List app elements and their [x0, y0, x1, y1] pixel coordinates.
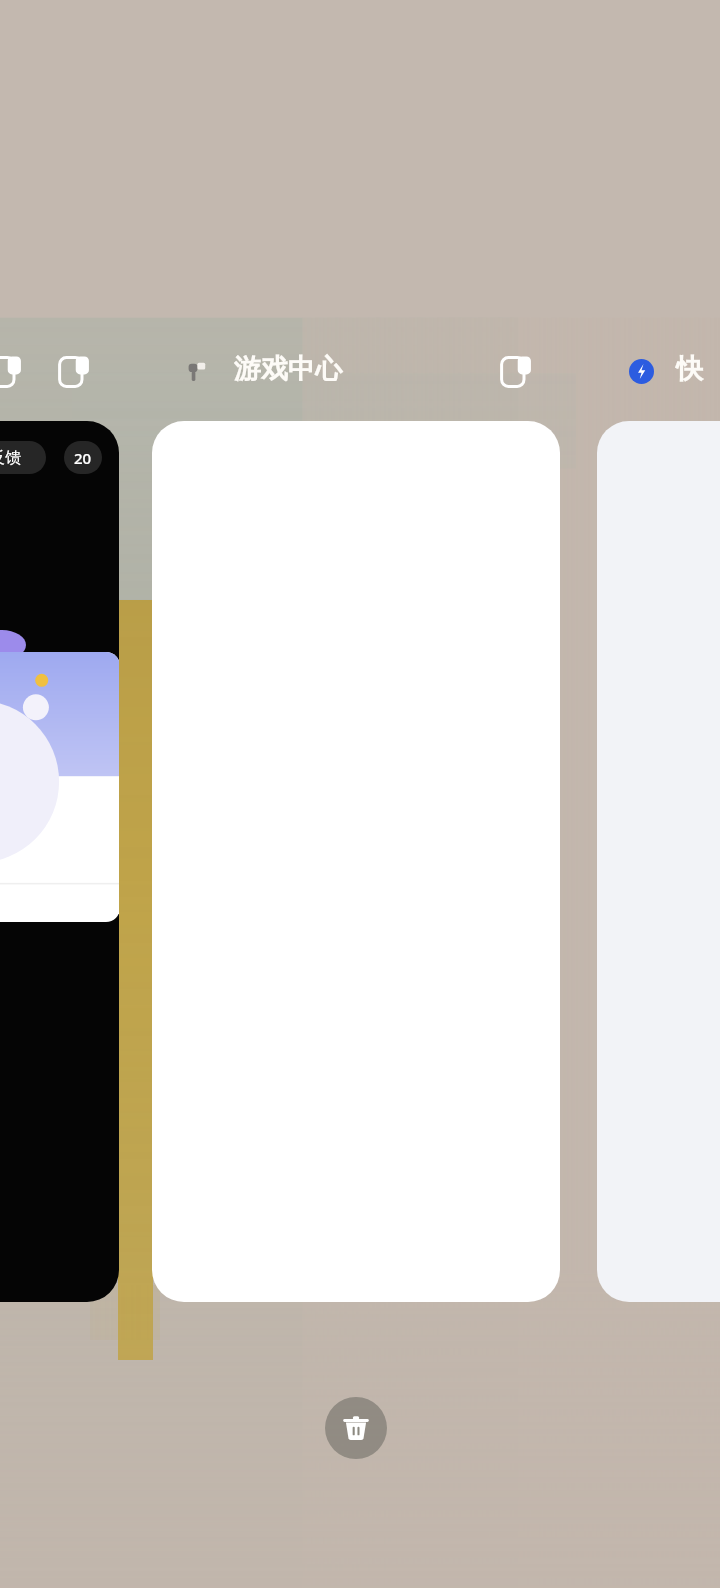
button[interactable] — [597, 421, 720, 1302]
button[interactable]: 快 — [676, 352, 703, 386]
button[interactable]: Game Center icon — [186, 358, 212, 384]
button[interactable]: App icon — [629, 359, 654, 384]
button[interactable]: 反馈 — [0, 441, 46, 474]
button[interactable]: 游戏中心 — [234, 352, 342, 386]
staticText: 游戏中心 — [234, 352, 342, 386]
button[interactable]: Clear all — [325, 1397, 387, 1459]
button[interactable]: 反馈 — [0, 421, 119, 1302]
staticText: 20 — [74, 448, 92, 468]
button[interactable]: Split screen — [54, 352, 94, 392]
button[interactable]: Split screen — [496, 352, 536, 392]
button[interactable]: 20 — [64, 441, 102, 474]
button[interactable] — [152, 421, 560, 1302]
staticText: 快 — [676, 352, 703, 386]
button[interactable]: App icon — [0, 352, 26, 392]
staticText: 反馈 — [0, 448, 21, 468]
